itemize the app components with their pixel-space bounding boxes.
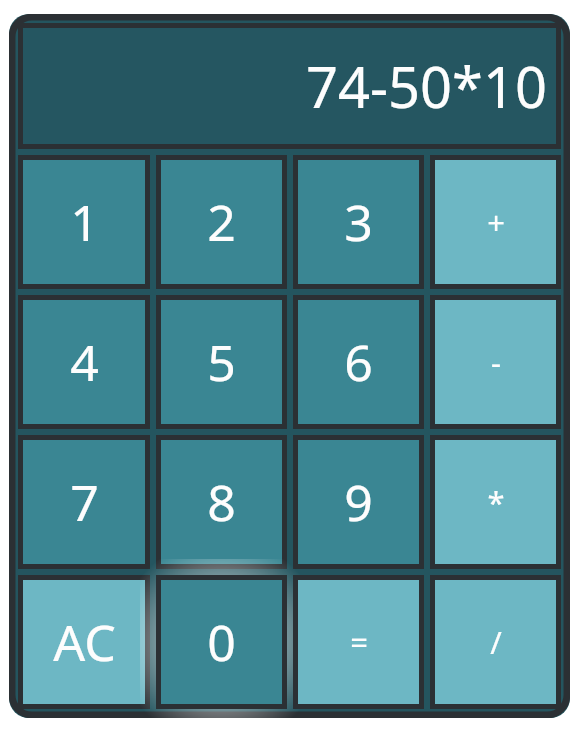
button[interactable]: 4 (18, 295, 150, 429)
button[interactable]: + (430, 155, 561, 289)
button[interactable]: 6 (293, 295, 424, 429)
staticText: 5 (207, 328, 236, 396)
staticText: = (350, 621, 368, 663)
staticText: 4 (70, 328, 99, 396)
staticText: / (490, 621, 502, 663)
staticText: 0 (207, 608, 236, 676)
button[interactable]: 8 (156, 435, 287, 569)
button[interactable]: AC (18, 575, 150, 709)
button[interactable]: 1 (18, 155, 150, 289)
staticText: 1 (70, 188, 99, 256)
staticText: + (487, 201, 505, 243)
button[interactable]: 2 (156, 155, 287, 289)
button[interactable]: = (293, 575, 424, 709)
staticText: 9 (344, 468, 373, 536)
staticText: 8 (207, 468, 236, 536)
button[interactable]: - (430, 295, 561, 429)
staticText: 6 (344, 328, 373, 396)
staticText: 2 (207, 188, 236, 256)
button[interactable]: 3 (293, 155, 424, 289)
button[interactable]: 7 (18, 435, 150, 569)
button[interactable]: * (430, 435, 561, 569)
staticText: 74-50*10 (305, 48, 547, 124)
button[interactable]: 9 (293, 435, 424, 569)
staticText: 3 (344, 188, 373, 256)
staticText: - (491, 341, 501, 383)
button[interactable]: 0 (156, 575, 287, 709)
button[interactable]: 5 (156, 295, 287, 429)
staticText: AC (53, 608, 116, 676)
staticText: * (487, 481, 505, 523)
button[interactable]: Display (18, 23, 561, 149)
button[interactable]: / (430, 575, 561, 709)
staticText: 7 (70, 468, 99, 536)
